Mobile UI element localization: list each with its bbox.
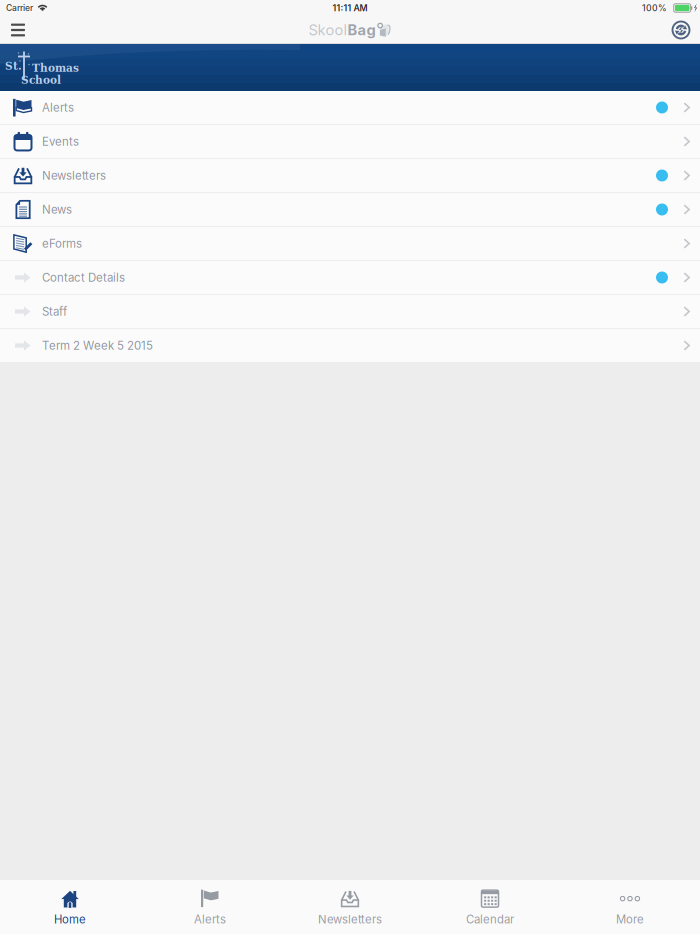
staticText: Thomas — [32, 62, 79, 74]
staticText: 100% — [642, 3, 667, 13]
button[interactable]: Newsletters — [0, 159, 700, 193]
staticText: Skool — [308, 21, 347, 39]
button[interactable]: Menu — [1, 17, 35, 43]
button[interactable]: eForms — [0, 227, 700, 261]
staticText: Contact Details — [42, 271, 125, 284]
staticText: Staff — [42, 305, 67, 318]
staticText: Term 2 Week 5 2015 — [42, 339, 153, 352]
staticText: Events — [42, 135, 79, 148]
button[interactable]: Alerts — [140, 880, 280, 934]
staticText: More — [616, 913, 644, 926]
button[interactable]: Term 2 Week 5 2015 — [0, 329, 700, 363]
button[interactable]: More — [560, 880, 700, 934]
staticText: Calendar — [466, 913, 514, 926]
staticText: Alerts — [42, 101, 74, 114]
staticText: eForms — [42, 237, 82, 250]
staticText: Alerts — [194, 913, 226, 926]
staticText: Newsletters — [42, 169, 106, 182]
staticText: School — [21, 74, 61, 86]
button[interactable]: Staff — [0, 295, 700, 329]
button[interactable]: Newsletters — [280, 880, 420, 934]
staticText: St. — [5, 60, 22, 72]
staticText: Carrier — [6, 3, 33, 13]
button[interactable]: Events — [0, 125, 700, 159]
button[interactable]: Refresh — [664, 17, 698, 43]
staticText: Newsletters — [318, 913, 382, 926]
button[interactable]: Home — [0, 880, 140, 934]
staticText: 11:11 AM — [332, 3, 367, 13]
staticText: Home — [54, 913, 86, 926]
button[interactable]: Calendar — [420, 880, 560, 934]
staticText: Bag — [347, 21, 375, 39]
button[interactable]: Alerts — [0, 91, 700, 125]
staticText: News — [42, 203, 72, 216]
button[interactable]: Contact Details — [0, 261, 700, 295]
button[interactable]: News — [0, 193, 700, 227]
